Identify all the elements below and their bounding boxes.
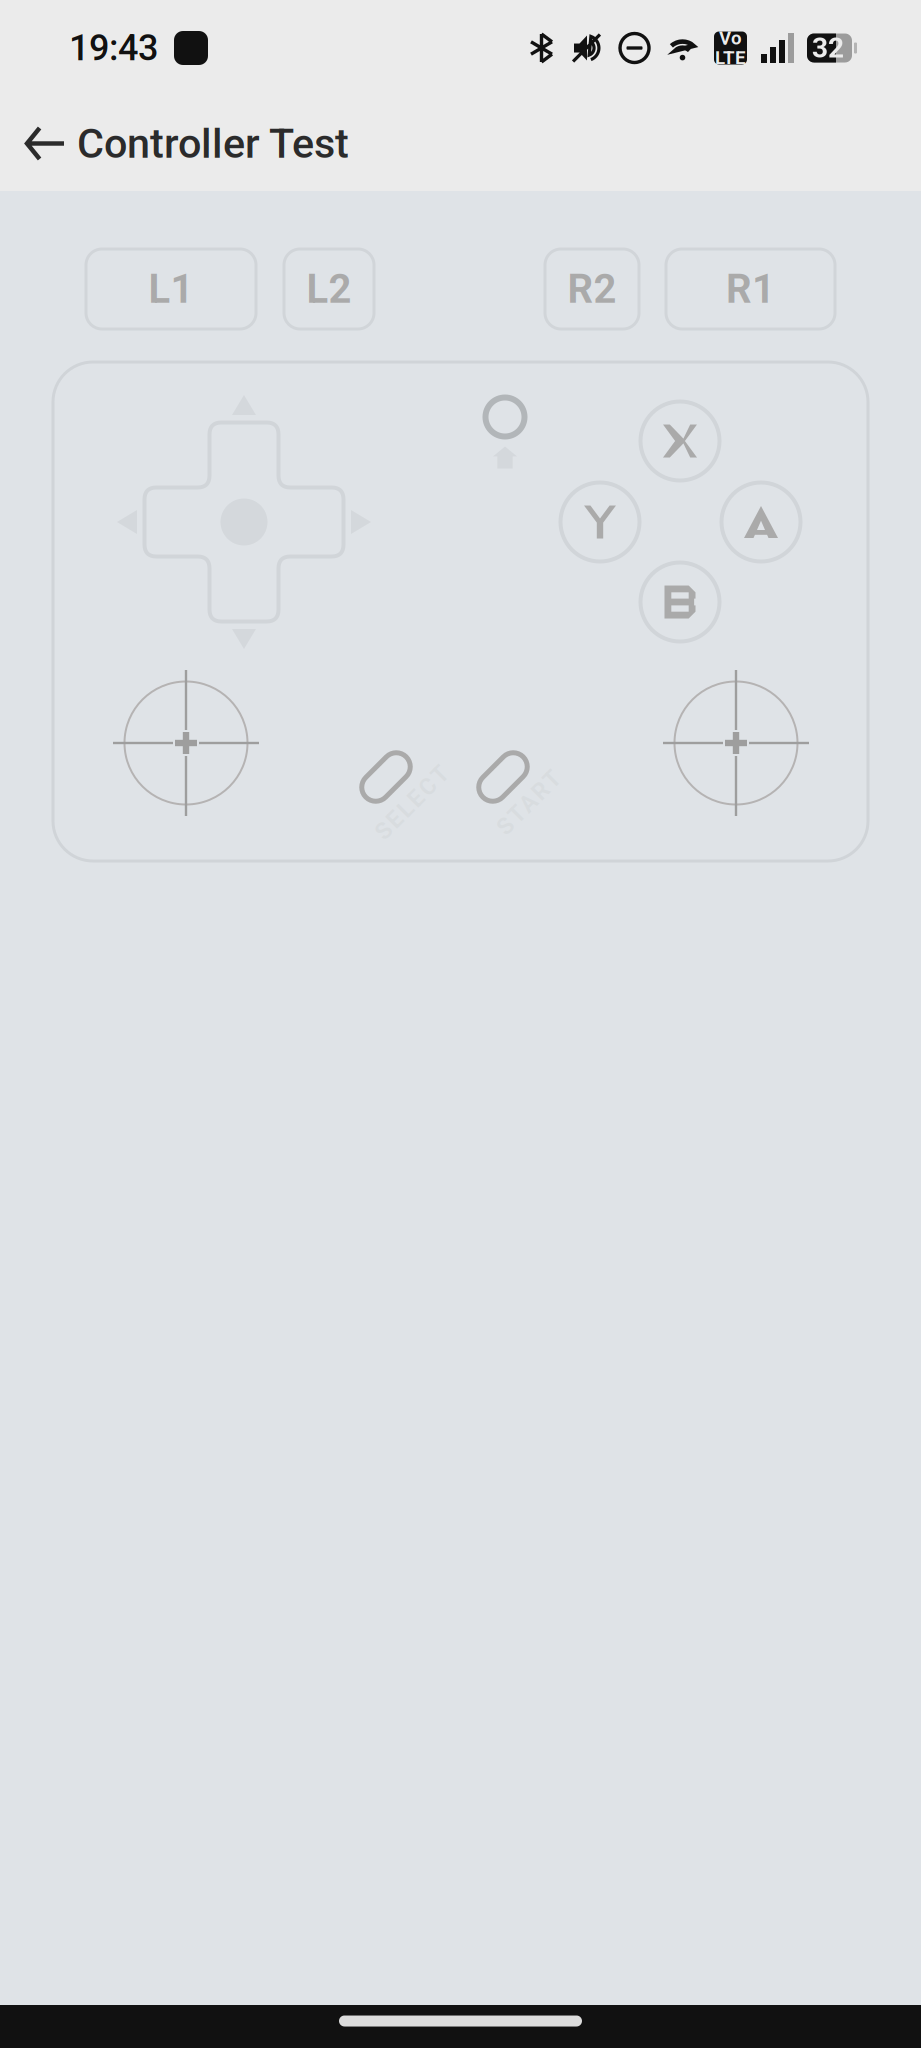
- button[interactable]: Home: [493, 446, 517, 468]
- button[interactable]: START: [438, 717, 568, 837]
- button[interactable]: Mode: [485, 397, 524, 436]
- button[interactable]: Y: [560, 482, 639, 561]
- button[interactable]: A: [721, 482, 800, 561]
- staticText: L2: [306, 266, 351, 312]
- staticText: 32: [812, 32, 844, 64]
- button[interactable]: Left stick: [108, 665, 263, 820]
- staticText: LTE: [715, 47, 746, 69]
- button[interactable]: R2: [545, 249, 639, 329]
- button[interactable]: L1: [86, 249, 256, 329]
- button[interactable]: R1: [666, 249, 835, 329]
- staticText: 19:43: [69, 27, 158, 69]
- button[interactable]: L2: [284, 249, 374, 329]
- staticText: R1: [726, 266, 775, 312]
- staticText: Controller Test: [77, 119, 349, 168]
- button[interactable]: SELECT: [321, 717, 451, 837]
- staticText: Vo: [719, 27, 742, 49]
- button[interactable]: B: [640, 562, 719, 641]
- button[interactable]: Right stick: [658, 665, 813, 820]
- staticText: L1: [148, 266, 193, 312]
- button[interactable]: D-pad: [124, 402, 364, 642]
- staticText: R2: [567, 266, 616, 312]
- staticText: SELECT: [365, 790, 459, 816]
- staticText: START: [489, 790, 569, 816]
- button[interactable]: X: [640, 401, 719, 480]
- button[interactable]: Back: [0, 106, 77, 181]
